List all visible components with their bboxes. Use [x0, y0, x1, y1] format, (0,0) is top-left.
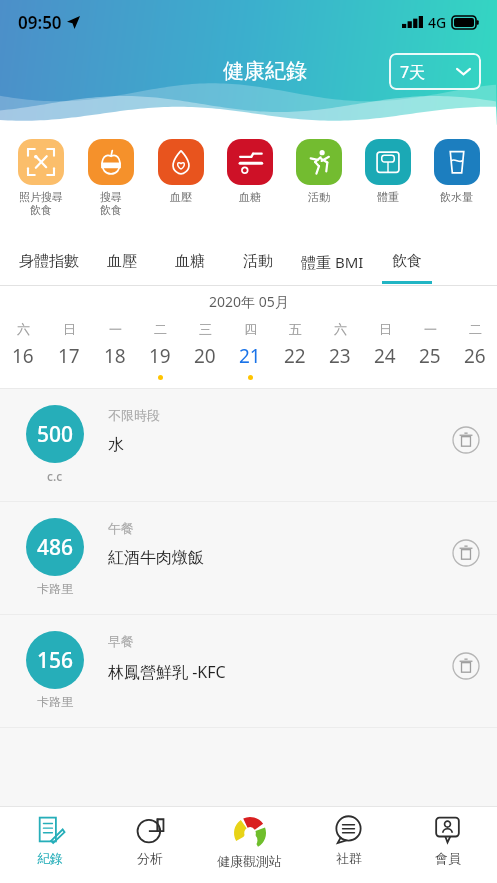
- button[interactable]: 7天: [389, 53, 481, 90]
- button[interactable]: 日: [46, 316, 92, 388]
- staticText: 分析: [137, 850, 163, 866]
- staticText: 飲水量: [440, 190, 473, 204]
- button[interactable]: 紀錄: [0, 806, 100, 883]
- button[interactable]: 照片搜尋 飲食: [6, 130, 76, 238]
- staticText: 26: [464, 343, 486, 369]
- button[interactable]: 活動: [284, 130, 353, 238]
- staticText: 25: [419, 343, 441, 369]
- staticText: 五: [289, 321, 302, 337]
- staticText: 六: [17, 321, 30, 337]
- button[interactable]: 體重 BMI: [292, 238, 373, 286]
- staticText: 林鳳營鮮乳 -KFC: [108, 661, 226, 683]
- staticText: 17: [58, 343, 80, 369]
- staticText: 卡路里: [37, 694, 73, 709]
- staticText: 活動: [243, 252, 273, 271]
- staticText: 早餐: [108, 633, 134, 649]
- button[interactable]: 二: [452, 316, 497, 388]
- staticText: 體重 BMI: [301, 252, 364, 272]
- staticText: 不限時段: [108, 407, 160, 423]
- staticText: 血壓: [107, 252, 137, 271]
- button[interactable]: 156: [0, 615, 497, 728]
- staticText: 血糖: [239, 190, 261, 204]
- button[interactable]: 會員: [398, 806, 497, 883]
- staticText: 水: [108, 435, 124, 455]
- button[interactable]: 486: [0, 502, 497, 615]
- button[interactable]: 血糖: [215, 130, 284, 238]
- button[interactable]: 一: [92, 316, 137, 388]
- staticText: 486: [37, 533, 74, 562]
- staticText: 三: [199, 321, 212, 337]
- button[interactable]: 活動: [224, 238, 292, 286]
- staticText: 社群: [336, 850, 362, 866]
- staticText: 18: [104, 343, 126, 369]
- button[interactable]: 社群: [299, 806, 398, 883]
- button[interactable]: 日: [362, 316, 407, 388]
- button[interactable]: 三: [182, 316, 227, 388]
- button[interactable]: 血糖: [156, 238, 224, 286]
- staticText: 22: [284, 343, 306, 369]
- button[interactable]: 身體指數: [10, 238, 88, 286]
- staticText: 20: [194, 343, 216, 369]
- staticText: 健康紀錄: [223, 58, 307, 84]
- button[interactable]: 六: [0, 316, 46, 388]
- staticText: 紀錄: [37, 850, 63, 866]
- staticText: 照片搜尋 飲食: [19, 190, 63, 218]
- staticText: 身體指數: [19, 252, 79, 271]
- staticText: 二: [154, 321, 167, 337]
- staticText: 19: [149, 343, 171, 369]
- button[interactable]: 分析: [100, 806, 200, 883]
- button[interactable]: 500: [0, 389, 497, 502]
- staticText: 血壓: [170, 190, 192, 204]
- staticText: 4G: [428, 13, 447, 32]
- staticText: 紅酒牛肉燉飯: [108, 548, 204, 568]
- staticText: 500: [37, 420, 74, 449]
- staticText: 搜尋 飲食: [100, 190, 122, 218]
- staticText: 午餐: [108, 520, 134, 536]
- staticText: 156: [37, 646, 74, 675]
- button[interactable]: 體重: [353, 130, 422, 238]
- staticText: 一: [109, 321, 122, 337]
- button[interactable]: 五: [272, 316, 317, 388]
- button[interactable]: 刪除: [451, 538, 481, 568]
- staticText: 卡路里: [37, 581, 73, 596]
- staticText: 健康觀測站: [217, 853, 282, 869]
- staticText: 23: [329, 343, 351, 369]
- staticText: 2020年 05月: [209, 292, 289, 311]
- button[interactable]: 刪除: [451, 651, 481, 681]
- staticText: 24: [374, 343, 396, 369]
- staticText: 日: [63, 321, 76, 337]
- button[interactable]: 六: [317, 316, 362, 388]
- button[interactable]: 飲水量: [422, 130, 491, 238]
- button[interactable]: 刪除: [451, 425, 481, 455]
- button[interactable]: 一: [407, 316, 452, 388]
- staticText: 六: [334, 321, 347, 337]
- staticText: 會員: [435, 850, 461, 866]
- staticText: 7天: [400, 61, 426, 83]
- button[interactable]: 健康觀測站: [200, 806, 299, 883]
- staticText: 日: [379, 321, 392, 337]
- button[interactable]: 血壓: [88, 238, 156, 286]
- staticText: 活動: [308, 190, 330, 204]
- staticText: 21: [239, 343, 261, 369]
- button[interactable]: 血壓: [146, 130, 215, 238]
- button[interactable]: 飲食: [373, 238, 441, 286]
- button[interactable]: 搜尋 飲食: [76, 130, 146, 238]
- staticText: 飲食: [392, 252, 422, 271]
- staticText: 四: [244, 321, 257, 337]
- staticText: 09:50: [18, 11, 62, 34]
- staticText: c.c: [47, 468, 63, 484]
- button[interactable]: 四: [227, 316, 272, 388]
- staticText: 二: [469, 321, 482, 337]
- staticText: 16: [12, 343, 34, 369]
- button[interactable]: 二: [137, 316, 182, 388]
- staticText: 一: [424, 321, 437, 337]
- staticText: 血糖: [175, 252, 205, 271]
- staticText: 體重: [377, 190, 399, 204]
